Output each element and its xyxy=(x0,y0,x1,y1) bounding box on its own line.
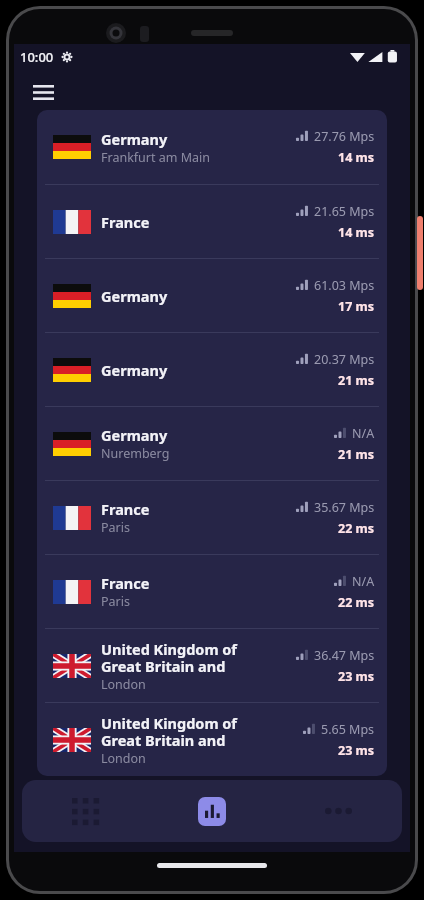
staticText: 36.47 Mps xyxy=(314,647,375,664)
staticText: 20.37 Mps xyxy=(314,351,375,368)
staticText: 22 ms xyxy=(338,594,375,611)
staticText: Frankfurt am Main xyxy=(101,149,211,166)
staticText: Paris xyxy=(101,593,130,610)
staticText: Germany xyxy=(101,286,168,306)
staticText: London xyxy=(101,750,146,767)
staticText: Germany xyxy=(101,425,168,445)
staticText: United Kingdom of Great Britain and xyxy=(101,639,237,676)
staticText: 23 ms xyxy=(338,742,375,759)
staticText: 22 ms xyxy=(338,520,375,537)
button[interactable]: United Kingdom of Great Britain and xyxy=(37,629,387,702)
staticText: France xyxy=(101,573,150,593)
staticText: 27.76 Mps xyxy=(314,128,375,145)
staticText: Nuremberg xyxy=(101,445,170,462)
staticText: 10:00 xyxy=(20,48,54,66)
staticText: 21 ms xyxy=(338,372,375,389)
staticText: 21.65 Mps xyxy=(314,203,375,220)
staticText: London xyxy=(101,676,146,693)
staticText: 61.03 Mps xyxy=(314,277,375,294)
staticText: Germany xyxy=(101,129,168,149)
button[interactable]: Germany xyxy=(37,407,387,480)
button[interactable]: Servers xyxy=(22,780,148,842)
staticText: France xyxy=(101,499,150,519)
button[interactable]: United Kingdom of Great Britain and xyxy=(37,703,387,776)
staticText: N/A xyxy=(352,573,375,590)
button[interactable]: France xyxy=(37,555,387,628)
button[interactable]: Menu xyxy=(28,78,58,106)
button[interactable]: More xyxy=(275,780,402,842)
staticText: 14 ms xyxy=(338,149,375,166)
staticText: France xyxy=(101,212,150,232)
button[interactable]: France xyxy=(37,185,387,258)
staticText: 5.65 Mps xyxy=(321,721,375,738)
staticText: 14 ms xyxy=(338,224,375,241)
staticText: 35.67 Mps xyxy=(314,499,375,516)
staticText: Paris xyxy=(101,519,130,536)
button[interactable]: Germany xyxy=(37,333,387,406)
button[interactable]: Speed test xyxy=(148,780,275,842)
staticText: N/A xyxy=(352,425,375,442)
button[interactable]: France xyxy=(37,481,387,554)
staticText: 21 ms xyxy=(338,446,375,463)
button[interactable]: Germany xyxy=(37,110,387,184)
staticText: United Kingdom of Great Britain and xyxy=(101,713,237,750)
button[interactable]: Germany xyxy=(37,259,387,332)
staticText: Germany xyxy=(101,360,168,380)
staticText: 23 ms xyxy=(338,668,375,685)
staticText: 17 ms xyxy=(338,298,375,315)
